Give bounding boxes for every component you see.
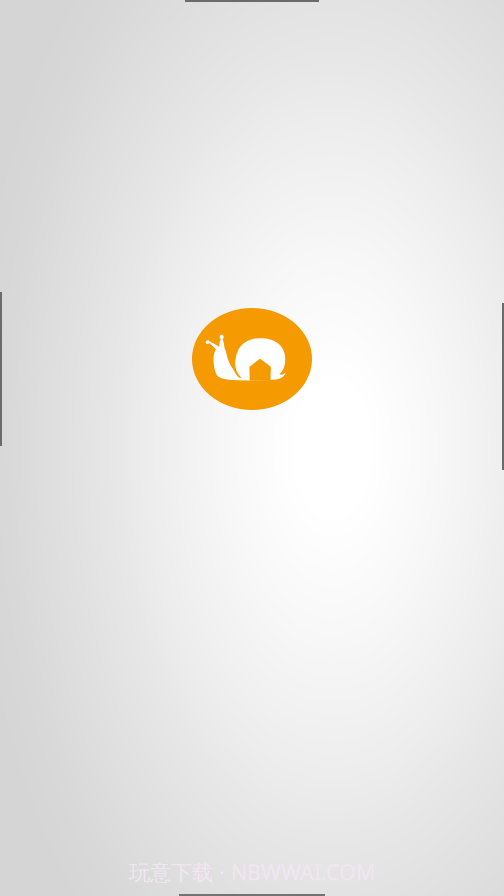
staticText: 玩意下载 · NBWWAI.COM	[129, 858, 375, 886]
